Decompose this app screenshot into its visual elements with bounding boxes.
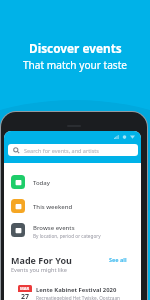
button[interactable]: See all bbox=[107, 254, 129, 265]
staticText: This weekend bbox=[33, 203, 73, 211]
staticText: Discover events bbox=[29, 40, 122, 56]
staticText: Lente Kabinet Festival 2020 bbox=[36, 286, 117, 294]
staticText: MAR bbox=[20, 286, 30, 291]
button[interactable]: MAR bbox=[11, 280, 134, 300]
staticText: 27 bbox=[21, 292, 30, 300]
staticText: Search for events, and artists bbox=[24, 147, 99, 154]
staticText: Recreatiegebied Het Twiske, Oostzaan bbox=[36, 295, 120, 300]
button[interactable]: Today bbox=[4, 170, 141, 194]
staticText: Browse events bbox=[33, 224, 75, 232]
staticText: By location, period or category bbox=[33, 233, 101, 239]
staticText: Today bbox=[33, 179, 50, 187]
staticText: Events you might like bbox=[11, 266, 67, 274]
button[interactable]: Browse events bbox=[4, 218, 141, 242]
button[interactable]: This weekend bbox=[4, 194, 141, 218]
staticText: Made For You bbox=[11, 254, 72, 266]
staticText: See all bbox=[109, 256, 127, 263]
button[interactable]: Search for events, and artists bbox=[8, 144, 138, 156]
staticText: That match your taste bbox=[23, 58, 127, 72]
